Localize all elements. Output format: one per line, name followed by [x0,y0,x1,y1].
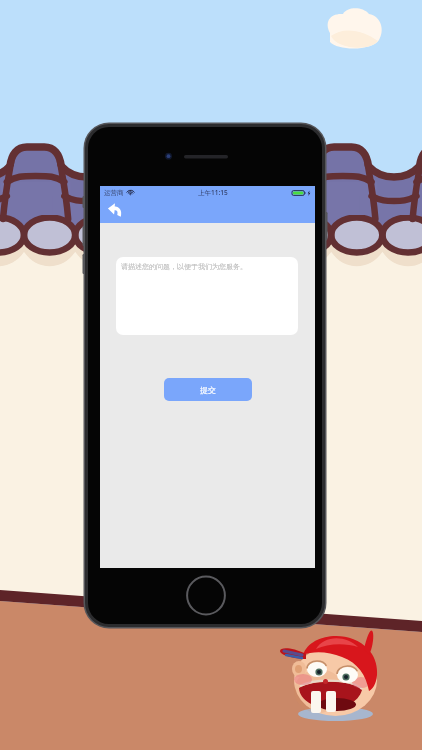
button[interactable]: Back [107,202,123,218]
staticText: 请描述您的问题，以便于我们为您服务。 [121,262,247,271]
staticText: 运营商 [104,189,124,197]
staticText: 上午11:15 [198,188,228,197]
button[interactable]: 请描述您的问题，以便于我们为您服务。 [116,257,298,335]
staticText: 提交 [200,385,216,395]
button[interactable]: 提交 [164,378,252,401]
